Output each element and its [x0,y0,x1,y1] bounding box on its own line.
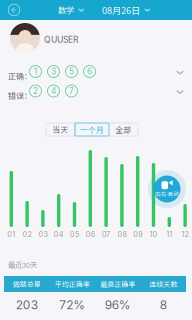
staticText: 7 [69,86,74,96]
staticText: 2 [33,86,38,96]
staticText: 07 [102,230,110,239]
staticText: 当天 [52,124,68,135]
button[interactable]: 全部 [109,123,138,136]
staticText: 错误： [8,89,32,101]
button[interactable]: 错误： [0,85,192,104]
button[interactable]: 正确： [0,65,192,84]
staticText: 连续天数 [149,279,177,289]
staticText: 数学 [58,4,74,16]
button[interactable]: 一个月 [75,123,109,136]
staticText: 08月26日 [102,3,140,17]
staticText: 10 [149,230,157,239]
staticText: 1 [34,66,37,76]
staticText: 平均正确率 [55,279,90,289]
staticText: 一个月 [80,124,104,135]
staticText: QUUSER [44,34,78,45]
staticText: 05 [70,230,79,239]
staticText: 正确： [8,70,32,82]
staticText: 11 [166,230,172,239]
staticText: 8 [160,298,167,312]
staticText: 做题总量 [13,279,41,289]
staticText: 72% [59,298,85,312]
staticText: 08 [117,230,126,239]
staticText: 96% [105,298,131,312]
staticText: 最高正确率 [100,279,135,289]
staticText: 02 [23,230,32,239]
staticText: 向右滑动 [155,190,179,198]
staticText: 12 [182,230,189,239]
staticText: 6 [87,66,92,76]
staticText: 203 [16,298,38,312]
staticText: 全部 [115,124,131,135]
staticText: 03 [38,230,47,239]
button[interactable]: 数学 [58,0,85,20]
staticText: 06 [86,230,95,239]
button[interactable]: Back [4,0,24,20]
button[interactable]: 08月26日 [102,0,151,20]
staticText: 最近30天 [8,259,37,270]
staticText: 09 [133,230,142,239]
staticText: 5 [69,66,74,76]
staticText: 4 [51,86,56,96]
staticText: 04 [54,230,64,239]
button[interactable]: 当天 [46,123,75,136]
staticText: 3 [51,66,56,76]
staticText: 01 [7,230,15,239]
